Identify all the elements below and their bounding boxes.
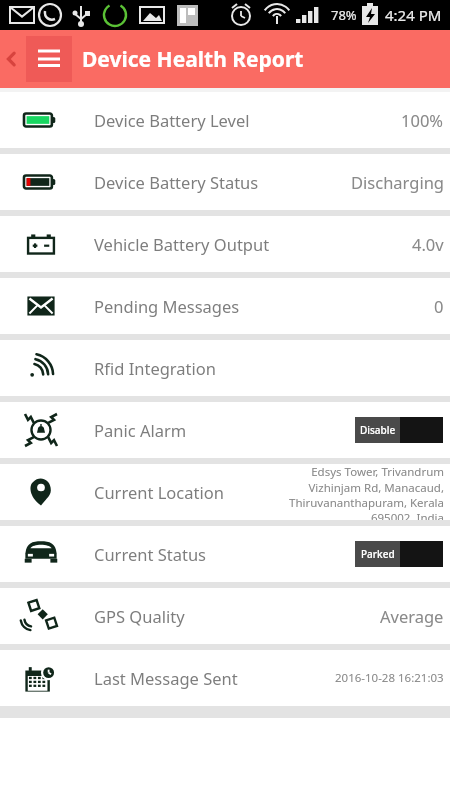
- staticText: 2016-10-28 16:21:03: [335, 670, 444, 686]
- staticText: Device Battery Level: [94, 109, 250, 131]
- staticText: Panic Alarm: [94, 419, 187, 441]
- staticText: 4.0v: [412, 233, 444, 255]
- staticText: Last Message Sent: [94, 667, 238, 689]
- button[interactable]: Device Battery Level: [0, 92, 450, 154]
- button[interactable]: Panic Alarm: [0, 402, 450, 464]
- button[interactable]: Current Location: [0, 464, 450, 526]
- staticText: 4:24 PM: [385, 5, 442, 25]
- button[interactable]: Parked: [355, 541, 443, 567]
- button[interactable]: Vehicle Battery Output: [0, 216, 450, 278]
- button[interactable]: Pending Messages: [0, 278, 450, 340]
- staticText: 0: [434, 295, 444, 317]
- staticText: 100%: [401, 109, 444, 131]
- button[interactable]: Current Status: [0, 526, 450, 588]
- staticText: Pending Messages: [94, 295, 240, 317]
- button[interactable]: Back: [0, 30, 24, 88]
- button[interactable]: Disable: [355, 417, 443, 443]
- button[interactable]: Rfid Integration: [0, 340, 450, 402]
- staticText: Rfid Integration: [94, 357, 216, 379]
- button[interactable]: Menu: [26, 36, 72, 82]
- staticText: Discharging: [351, 171, 444, 193]
- staticText: Device Battery Status: [94, 171, 259, 193]
- staticText: GPS Quality: [94, 605, 185, 627]
- staticText: Vehicle Battery Output: [94, 233, 270, 255]
- staticText: Average: [380, 605, 444, 627]
- button[interactable]: GPS Quality: [0, 588, 450, 650]
- staticText: Device Health Report: [82, 45, 304, 74]
- button[interactable]: Device Battery Status: [0, 154, 450, 216]
- button[interactable]: Last Message Sent: [0, 650, 450, 712]
- staticText: Edsys Tower, Trivandrum Vizhinjam Rd, Ma…: [200, 464, 444, 520]
- staticText: Parked: [361, 547, 395, 561]
- staticText: 78%: [331, 6, 357, 24]
- staticText: Current Status: [94, 543, 207, 565]
- staticText: Current Location: [94, 481, 224, 503]
- staticText: Disable: [360, 423, 396, 437]
